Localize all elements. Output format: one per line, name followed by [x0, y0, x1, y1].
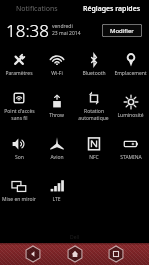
- staticText: Modifier: [110, 27, 134, 35]
- staticText: 23 mai 2014: [52, 30, 81, 37]
- button[interactable]: Wi-Fi: [38, 43, 75, 85]
- button[interactable]: Notifications: [0, 0, 74, 17]
- staticText: Rotation: [84, 108, 104, 115]
- staticText: Dell: [70, 234, 80, 241]
- button[interactable]: Back: [24, 245, 42, 263]
- button[interactable]: Bluetooth: [75, 43, 112, 85]
- button[interactable]: Réglages rapides: [74, 0, 149, 17]
- staticText: Son: [15, 154, 24, 161]
- staticText: Throw: [49, 112, 64, 119]
- button[interactable]: Luminosité: [112, 85, 149, 127]
- staticText: STAMINA: [120, 154, 142, 161]
- staticText: LTE: [52, 196, 61, 203]
- button[interactable]: Point d'accès: [0, 85, 38, 127]
- button[interactable]: Recents: [107, 245, 125, 263]
- staticText: vendredi: [52, 23, 73, 30]
- staticText: Bluetooth: [82, 70, 106, 77]
- staticText: Avion: [50, 154, 64, 161]
- button[interactable]: Home: [66, 245, 84, 263]
- button[interactable]: LTE: [38, 169, 75, 211]
- button[interactable]: STAMINA: [112, 127, 149, 169]
- button[interactable]: Throw: [38, 85, 75, 127]
- staticText: Wi-Fi: [51, 70, 63, 77]
- button[interactable]: NFC: [75, 127, 112, 169]
- button[interactable]: Paramètres: [0, 43, 38, 85]
- staticText: NFC: [89, 154, 99, 161]
- button[interactable]: Avion: [38, 127, 75, 169]
- staticText: Notifications: [16, 4, 58, 14]
- button[interactable]: Son: [0, 127, 38, 169]
- button[interactable]: Mise en miroir: [0, 169, 38, 211]
- staticText: Réglages rapides: [83, 4, 141, 14]
- button[interactable]: Modifier: [102, 24, 142, 37]
- button[interactable]: Emplacement: [112, 43, 149, 85]
- staticText: Emplacement: [114, 70, 147, 77]
- staticText: Mise en miroir: [2, 196, 36, 203]
- staticText: Paramètres: [5, 70, 33, 77]
- button[interactable]: Rotation: [75, 85, 112, 127]
- staticText: sans fil: [11, 115, 28, 122]
- staticText: Luminosité: [117, 112, 144, 119]
- staticText: 18:38: [6, 19, 49, 42]
- staticText: automatique: [78, 115, 109, 122]
- staticText: Point d'accès: [4, 108, 35, 115]
